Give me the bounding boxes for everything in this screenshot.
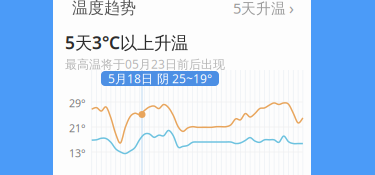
staticText: 29° [69,96,86,110]
button[interactable]: 5天升温 [233,0,294,19]
staticText: 最高温将于05月23日前后出现 [65,56,225,72]
staticText: 21° [69,121,86,135]
staticText: › [289,0,294,19]
button[interactable]: 5月18日 阴 25~19° [101,71,219,86]
staticText: 5天3°C以上升温 [65,31,188,54]
staticText: 13° [69,146,86,160]
staticText: 5月18日 阴 25~19° [108,70,212,86]
staticText: 5天升温 [233,0,286,18]
staticText: 温度趋势 [72,0,136,18]
